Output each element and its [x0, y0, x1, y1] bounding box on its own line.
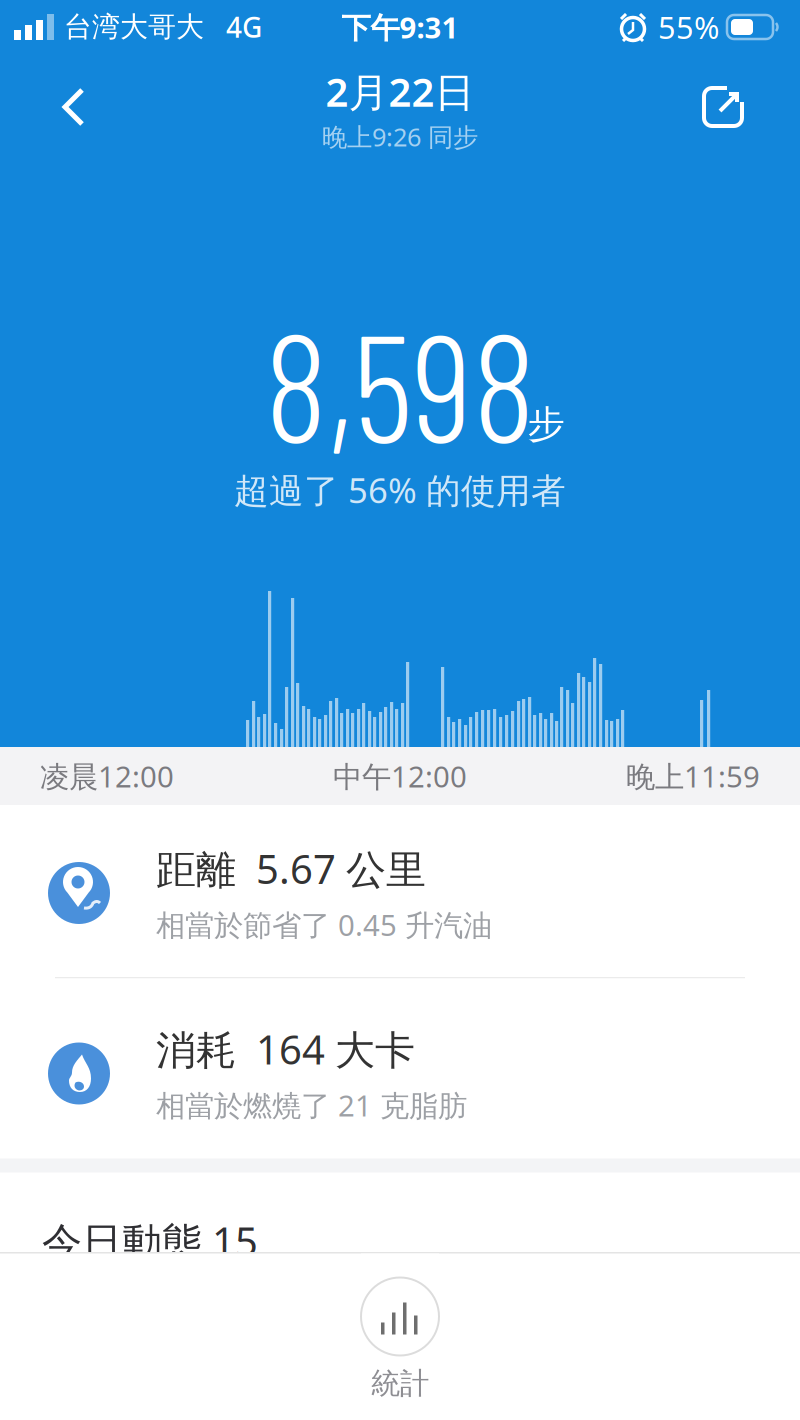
staticText: 2月22日 — [325, 65, 474, 118]
staticText: 步 — [527, 401, 564, 447]
button[interactable]: 統計 — [361, 1253, 439, 1401]
staticText: 相當於燃燒了 21 克脂肪 — [156, 1086, 467, 1125]
button[interactable]: 消耗 164 大卡 — [0, 978, 800, 1158]
staticText: 相當於節省了 0.45 升汽油 — [156, 905, 492, 944]
staticText: 55% — [658, 7, 719, 47]
button[interactable] — [704, 88, 800, 126]
staticText: 統計 — [371, 1365, 429, 1401]
staticText: 凌晨12:00 — [40, 756, 174, 795]
staticText: 消耗 164 大卡 — [156, 1022, 415, 1076]
staticText: 晚上9:26 同步 — [322, 120, 478, 153]
button[interactable] — [0, 86, 88, 128]
staticText: 中午12:00 — [333, 756, 467, 795]
staticText: 距離 5.67 公里 — [156, 842, 426, 895]
button[interactable]: 距離 5.67 公里 — [0, 805, 800, 977]
staticText: 今日動態 15 — [42, 1214, 258, 1268]
staticText: 台湾大哥大 — [64, 10, 204, 44]
staticText: 超過了 56% 的使用者 — [234, 467, 566, 513]
staticText: 晚上11:59 — [626, 756, 760, 795]
staticText: 4G — [226, 8, 262, 46]
staticText: 8,598 — [264, 292, 535, 473]
staticText: 下午9:31 — [341, 7, 458, 46]
